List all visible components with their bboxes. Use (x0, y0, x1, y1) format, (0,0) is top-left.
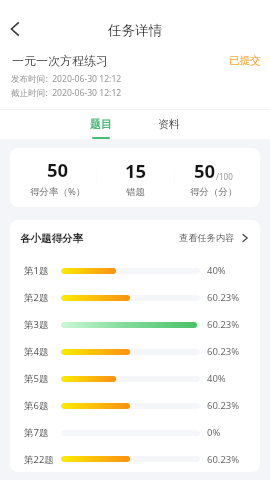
staticText: 已提交 (229, 54, 261, 67)
staticText: 0% (207, 426, 221, 439)
button[interactable]: 第6题 (10, 392, 260, 419)
staticText: 60.23% (207, 345, 240, 358)
staticText: 第4题 (24, 345, 57, 358)
button[interactable]: 第2题 (10, 284, 260, 311)
button[interactable]: 15 (97, 158, 174, 198)
staticText: 第5题 (24, 372, 57, 385)
staticText: 60.23% (207, 291, 240, 304)
staticText: 各小题得分率 (20, 232, 83, 245)
button[interactable]: 第7题 (10, 419, 260, 446)
button[interactable]: 题目 (79, 110, 123, 139)
staticText: 得分率（%） (30, 185, 86, 198)
staticText: 第7题 (24, 426, 57, 439)
staticText: 15 (125, 158, 147, 183)
staticText: 60.23% (207, 453, 240, 466)
staticText: 截止时间: 2020-06-30 12:12 (11, 87, 122, 99)
staticText: 得分（分） (190, 186, 238, 198)
staticText: 60.23% (207, 399, 240, 412)
staticText: 一元一次方程练习 (12, 53, 108, 68)
staticText: 发布时间: 2020-06-30 12:12 (11, 73, 122, 85)
button[interactable]: 查看任务内容 (179, 230, 250, 246)
staticText: 第6题 (24, 399, 57, 412)
staticText: 60.23% (207, 318, 240, 331)
staticText: 40% (207, 372, 226, 385)
button[interactable]: 第4题 (10, 338, 260, 365)
staticText: 错题 (126, 186, 145, 198)
button[interactable]: 第3题 (10, 311, 260, 338)
staticText: 50 (47, 157, 69, 182)
button[interactable]: 第1题 (10, 257, 260, 284)
button[interactable]: 第22题 (10, 446, 260, 472)
staticText: 查看任务内容 (179, 232, 235, 244)
button[interactable]: 已提交 (226, 51, 261, 70)
staticText: 第22题 (24, 453, 57, 466)
staticText: 第3题 (24, 318, 57, 331)
button[interactable]: 50 (175, 158, 252, 198)
staticText: 第2题 (24, 291, 57, 304)
staticText: /100 (216, 171, 233, 182)
staticText: 第1题 (24, 264, 57, 277)
staticText: 任务详情 (108, 22, 162, 39)
button[interactable]: 50 (20, 157, 96, 198)
button[interactable]: 资料 (147, 110, 191, 139)
staticText: 题目 (90, 117, 112, 131)
button[interactable]: Back (0, 12, 32, 46)
staticText: 50 (194, 158, 216, 183)
staticText: 资料 (158, 117, 180, 131)
button[interactable]: 第5题 (10, 365, 260, 392)
staticText: 40% (207, 264, 226, 277)
